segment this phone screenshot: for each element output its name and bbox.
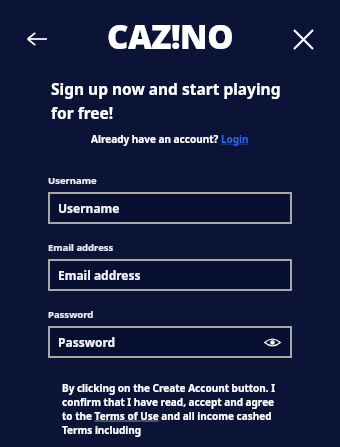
button[interactable]: Password	[48, 326, 292, 358]
staticText: Already have an account? Login	[91, 132, 249, 146]
button[interactable]: Close	[280, 16, 326, 62]
button[interactable]: Back	[14, 16, 60, 62]
staticText: CAZ!NO	[107, 14, 233, 59]
button[interactable]: Already have an account? Login	[0, 132, 340, 146]
staticText: Sign up now and start playing for free!	[51, 78, 289, 123]
button[interactable]: CAZ!NO	[107, 14, 233, 59]
staticText: Username	[48, 174, 97, 187]
staticText: Password	[48, 308, 94, 321]
staticText: By clicking on the Create Account button…	[62, 381, 278, 437]
button[interactable]: Username	[48, 192, 292, 224]
staticText: Password	[58, 334, 262, 350]
staticText: Email address	[48, 241, 114, 254]
button[interactable]: Email address	[48, 259, 292, 291]
button[interactable]: Show password	[262, 332, 282, 352]
staticText: Email address	[58, 267, 282, 283]
staticText: Username	[58, 200, 282, 216]
